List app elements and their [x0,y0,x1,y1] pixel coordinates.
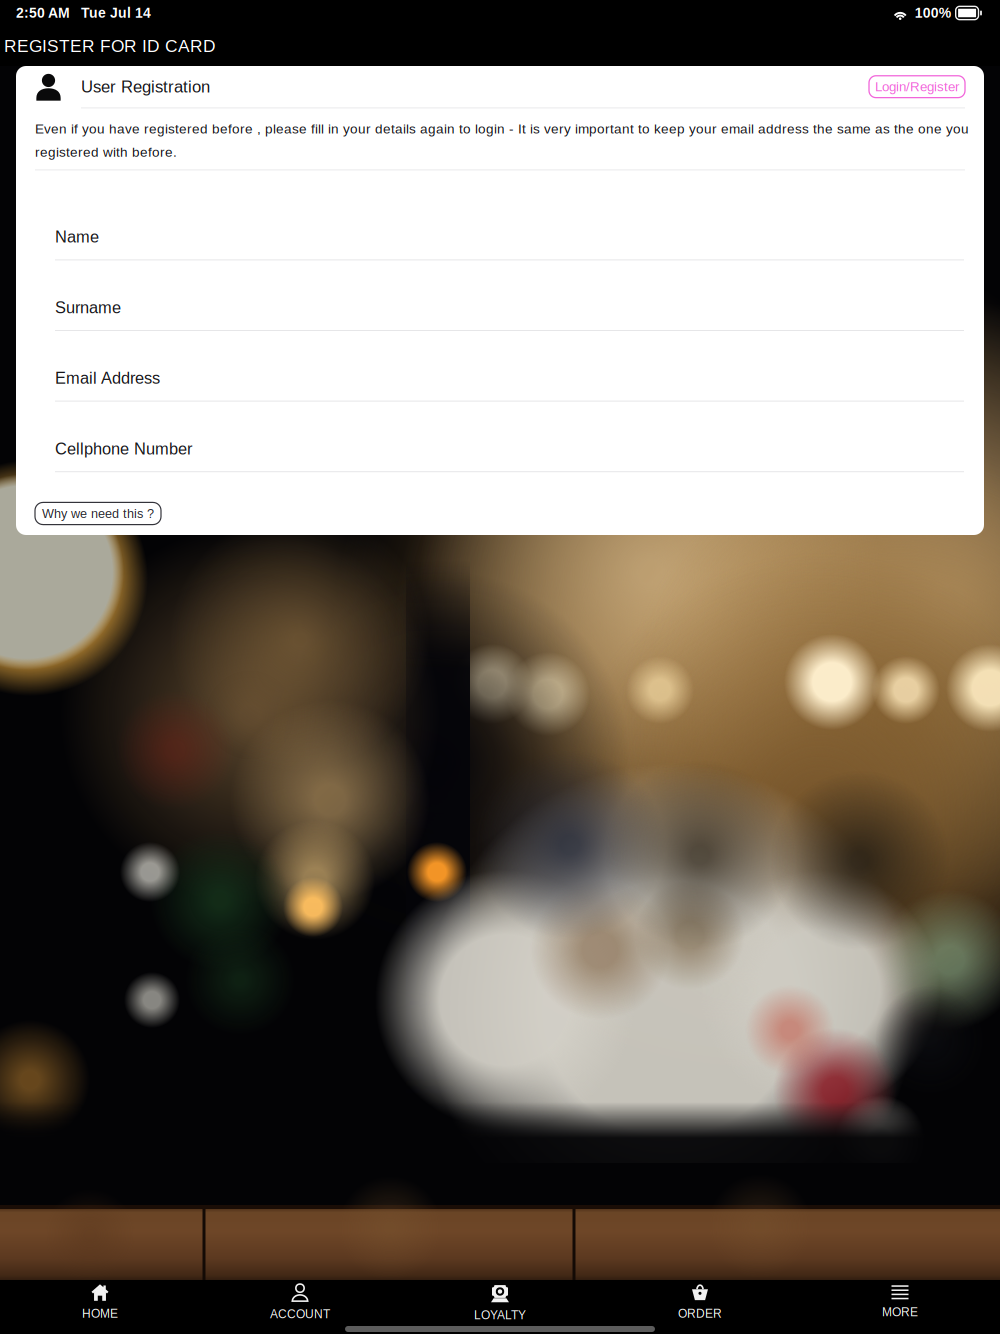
staticText: ORDER [678,1307,722,1320]
staticText: Surname [55,298,121,317]
button[interactable]: ORDER [600,1281,800,1323]
staticText: 100% [915,5,951,21]
button[interactable]: Login/Register [869,76,965,98]
staticText: HOME [82,1307,118,1320]
staticText: Login/Register [875,79,959,94]
staticText: REGISTER FOR ID CARD [4,36,216,56]
button[interactable]: MORE [800,1281,1000,1323]
staticText: LOYALTY [474,1308,526,1322]
staticText: Email Address [55,369,160,387]
button[interactable]: LOYALTY [400,1281,600,1323]
button[interactable]: ACCOUNT [200,1281,400,1323]
staticText: Name [55,228,99,246]
staticText: Even if you have registered before , ple… [35,121,969,159]
staticText: ACCOUNT [270,1307,330,1321]
staticText: User Registration [81,77,210,96]
staticText: Tue Jul 14 [81,5,151,21]
button[interactable]: HOME [0,1281,200,1323]
button[interactable]: Why we need this ? [35,502,161,525]
staticText: Why we need this ? [42,506,154,521]
staticText: MORE [882,1305,918,1319]
staticText: 2:50 AM [16,5,70,21]
staticText: Cellphone Number [55,439,192,458]
